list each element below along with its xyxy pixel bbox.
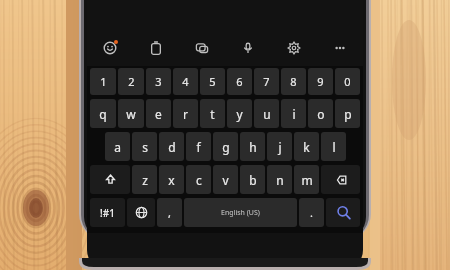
staticText: k: [303, 139, 310, 155]
button[interactable]: y: [227, 99, 252, 128]
button[interactable]: Clipboard: [145, 37, 167, 59]
staticText: b: [249, 172, 257, 188]
staticText: a: [114, 139, 121, 155]
staticText: 5: [209, 74, 216, 89]
button[interactable]: j: [267, 132, 292, 161]
staticText: j: [278, 139, 282, 155]
staticText: 7: [263, 74, 270, 89]
staticText: q: [99, 106, 107, 122]
button[interactable]: d: [159, 132, 184, 161]
staticText: s: [142, 139, 148, 155]
staticText: x: [168, 172, 175, 188]
button[interactable]: n: [267, 165, 292, 194]
staticText: 9: [317, 74, 324, 89]
button[interactable]: 8: [281, 68, 306, 95]
button[interactable]: ,: [157, 198, 182, 227]
button[interactable]: g: [213, 132, 238, 161]
button[interactable]: a: [105, 132, 130, 161]
staticText: ,: [168, 205, 171, 220]
button[interactable]: Shift: [90, 165, 130, 194]
staticText: p: [344, 106, 352, 122]
staticText: w: [126, 106, 136, 122]
button[interactable]: Stickers: [191, 37, 213, 59]
staticText: l: [332, 139, 336, 155]
button[interactable]: p: [335, 99, 360, 128]
button[interactable]: v: [213, 165, 238, 194]
button[interactable]: x: [159, 165, 184, 194]
staticText: h: [249, 139, 257, 155]
button[interactable]: 1: [90, 68, 116, 95]
button[interactable]: b: [240, 165, 265, 194]
button[interactable]: More options: [329, 37, 351, 59]
button[interactable]: 0: [335, 68, 360, 95]
staticText: .: [310, 205, 313, 220]
staticText: r: [183, 106, 188, 122]
button[interactable]: z: [132, 165, 157, 194]
staticText: 3: [155, 74, 162, 89]
button[interactable]: i: [281, 99, 306, 128]
staticText: y: [236, 106, 243, 122]
staticText: d: [168, 139, 176, 155]
staticText: m: [301, 172, 313, 188]
button[interactable]: l: [321, 132, 346, 161]
button[interactable]: 2: [118, 68, 144, 95]
staticText: 8: [290, 74, 297, 89]
button[interactable]: r: [173, 99, 198, 128]
button[interactable]: 3: [146, 68, 171, 95]
staticText: v: [222, 172, 229, 188]
staticText: 0: [344, 74, 351, 89]
button[interactable]: English (US): [184, 198, 297, 227]
button[interactable]: u: [254, 99, 279, 128]
staticText: o: [317, 106, 325, 122]
button[interactable]: h: [240, 132, 265, 161]
button[interactable]: 4: [173, 68, 198, 95]
staticText: 1: [100, 74, 107, 89]
staticText: n: [276, 172, 284, 188]
staticText: z: [142, 172, 148, 188]
button[interactable]: Voice input: [237, 37, 259, 59]
staticText: f: [196, 139, 201, 155]
button[interactable]: Change language: [127, 198, 155, 227]
staticText: English (US): [221, 208, 260, 218]
staticText: 6: [236, 74, 243, 89]
staticText: 2: [128, 74, 135, 89]
button[interactable]: Backspace: [321, 165, 360, 194]
button[interactable]: !#1: [90, 198, 125, 227]
staticText: t: [210, 106, 215, 122]
button[interactable]: 9: [308, 68, 333, 95]
button[interactable]: m: [294, 165, 319, 194]
button[interactable]: 7: [254, 68, 279, 95]
button[interactable]: w: [118, 99, 144, 128]
staticText: u: [263, 106, 271, 122]
button[interactable]: Emoji: [99, 37, 121, 59]
button[interactable]: Search: [326, 198, 360, 227]
button[interactable]: Settings: [283, 37, 305, 59]
button[interactable]: f: [186, 132, 211, 161]
button[interactable]: 5: [200, 68, 225, 95]
staticText: 4: [182, 74, 189, 89]
button[interactable]: s: [132, 132, 157, 161]
button[interactable]: .: [299, 198, 324, 227]
button[interactable]: o: [308, 99, 333, 128]
button[interactable]: k: [294, 132, 319, 161]
staticText: i: [292, 106, 296, 122]
staticText: c: [196, 172, 202, 188]
staticText: !#1: [100, 206, 115, 220]
staticText: e: [155, 106, 162, 122]
button[interactable]: e: [146, 99, 171, 128]
staticText: g: [222, 139, 230, 155]
button[interactable]: q: [90, 99, 116, 128]
button[interactable]: t: [200, 99, 225, 128]
button[interactable]: 6: [227, 68, 252, 95]
button[interactable]: c: [186, 165, 211, 194]
